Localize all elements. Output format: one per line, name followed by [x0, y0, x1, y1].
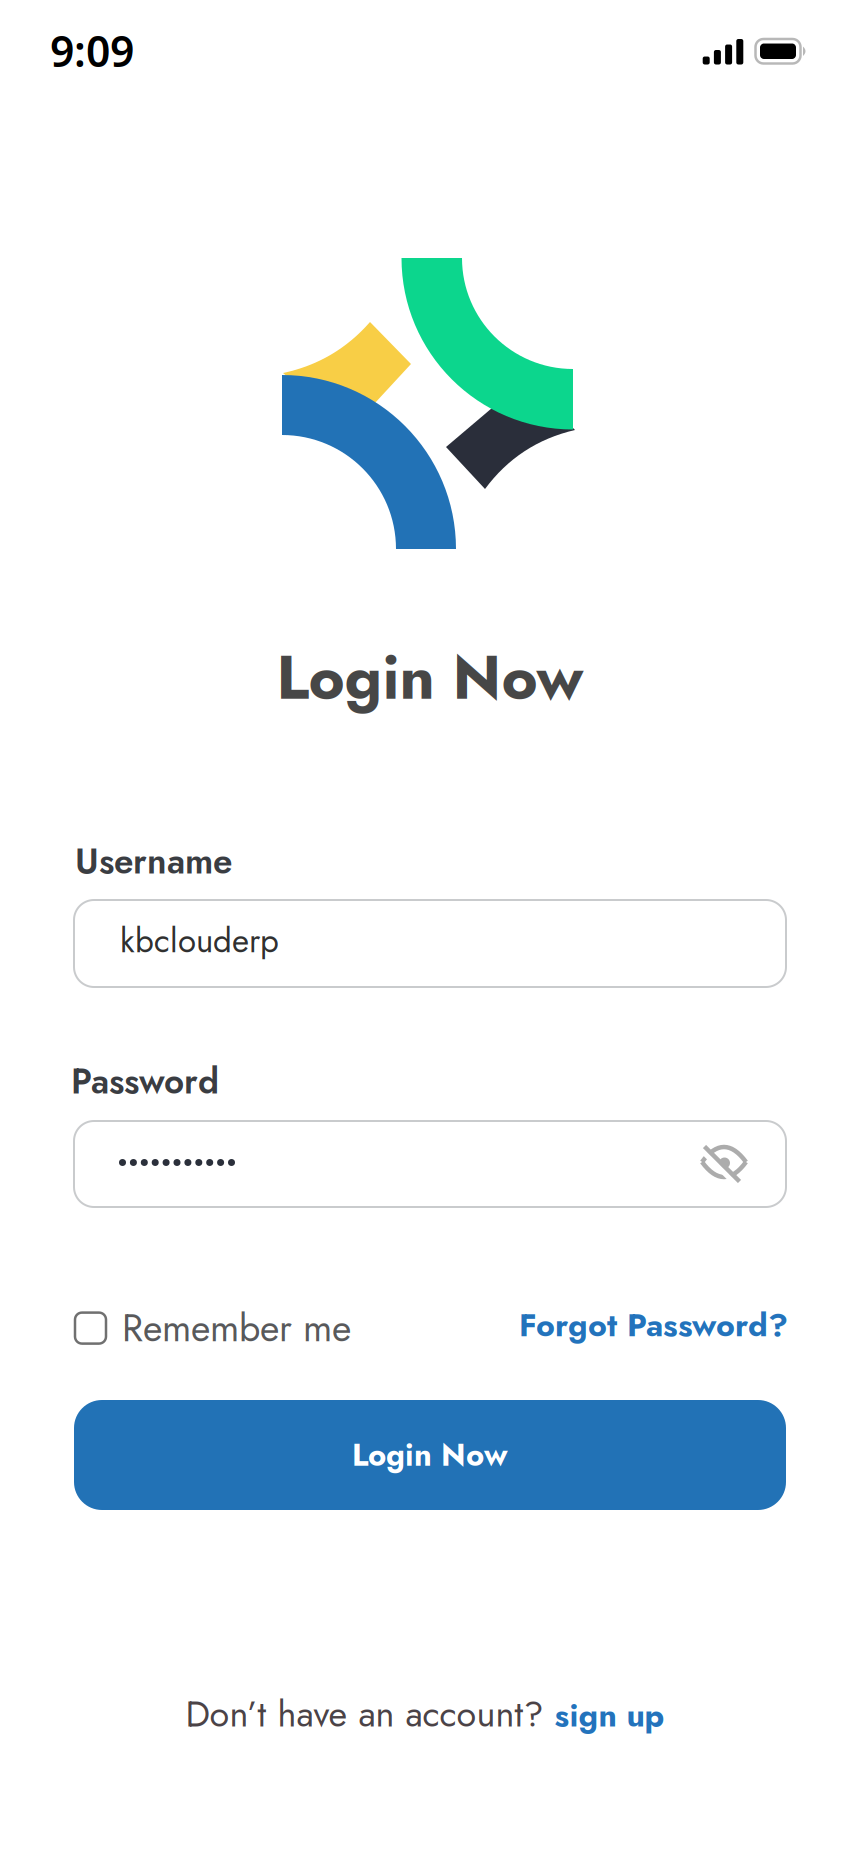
staticText: Login Now — [276, 633, 583, 722]
button[interactable]: sign up — [554, 1692, 664, 1738]
button[interactable]: Remember me — [75, 1301, 351, 1355]
staticText: Don’t have an account? — [185, 1688, 554, 1740]
staticText: sign up — [554, 1692, 664, 1738]
staticText: Password — [71, 1056, 219, 1107]
staticText: kbclouderp — [120, 917, 279, 965]
staticText: Login Now — [352, 1433, 508, 1477]
button[interactable]: Login Now — [74, 1400, 786, 1510]
staticText: Forgot Password? — [519, 1302, 788, 1348]
staticText: 9:09 — [50, 22, 134, 79]
button[interactable]: Forgot Password? — [519, 1302, 788, 1348]
button[interactable]: Show password — [687, 1132, 761, 1196]
staticText: Username — [75, 836, 232, 887]
staticText: Remember me — [122, 1301, 351, 1355]
